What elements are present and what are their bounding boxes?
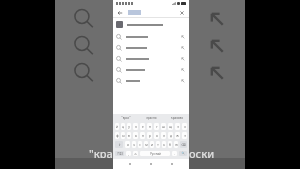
button[interactable]: щ: [168, 123, 173, 130]
button[interactable]: Insert suggestion: [204, 6, 230, 32]
button[interactable]: Insert: [113, 53, 189, 64]
staticText: с: [139, 143, 141, 147]
button[interactable]: Insert: [113, 31, 189, 42]
button[interactable]: Insert suggestion: [204, 33, 230, 59]
button[interactable]: а: [133, 132, 138, 139]
staticText: й: [116, 125, 118, 129]
button[interactable]: Insert suggestion: [204, 60, 230, 86]
staticText: м: [145, 143, 148, 147]
button[interactable]: я: [125, 141, 130, 148]
staticText: ц: [122, 125, 124, 129]
button[interactable]: ь: [162, 141, 166, 148]
staticText: ,: [128, 152, 129, 156]
button[interactable]: з: [175, 123, 180, 130]
button[interactable]: ?123: [115, 151, 124, 156]
button[interactable]: ф: [115, 132, 119, 139]
button[interactable]: д: [168, 132, 173, 139]
button[interactable]: Recents: [168, 160, 176, 168]
staticText: у: [128, 125, 130, 129]
staticText: ю: [175, 143, 178, 147]
button[interactable]: Insert: [180, 67, 186, 73]
staticText: г: [156, 125, 158, 129]
staticText: р: [149, 134, 151, 138]
staticText: ж: [176, 134, 179, 138]
staticText: щ: [169, 125, 172, 129]
button[interactable]: ж: [175, 132, 180, 139]
button[interactable]: с: [138, 141, 142, 148]
button[interactable]: Search: [71, 60, 97, 86]
button[interactable]: э: [182, 132, 187, 139]
button[interactable]: Insert: [180, 45, 186, 51]
button[interactable]: о: [154, 132, 159, 139]
button[interactable]: Insert: [180, 78, 186, 84]
staticText: к: [135, 125, 137, 129]
button[interactable]: ч: [132, 141, 136, 148]
staticText: н: [149, 125, 151, 129]
button[interactable]: ы: [121, 132, 125, 139]
button[interactable]: ш: [161, 123, 166, 130]
button[interactable]: т: [156, 141, 160, 148]
staticText: красиво: [171, 116, 183, 120]
button[interactable]: ц: [121, 123, 125, 130]
staticText: 🔍: [181, 152, 185, 155]
button[interactable]: в: [127, 132, 131, 139]
button[interactable]: ⇧: [115, 141, 123, 148]
button[interactable]: [113, 18, 189, 31]
button[interactable]: х: [182, 123, 187, 130]
button[interactable]: ,: [126, 151, 131, 156]
button[interactable]: р: [147, 132, 152, 139]
button[interactable]: Back: [116, 9, 124, 17]
button[interactable]: п: [140, 132, 145, 139]
staticText: з: [177, 125, 179, 129]
button[interactable]: и: [150, 141, 154, 148]
staticText: ш: [162, 125, 165, 129]
button[interactable]: м: [144, 141, 148, 148]
staticText: красно: [146, 116, 157, 120]
button[interactable]: н: [147, 123, 152, 130]
staticText: д: [170, 134, 172, 138]
button[interactable]: г: [154, 123, 159, 130]
staticText: ы: [122, 134, 125, 138]
button[interactable]: Home: [147, 160, 155, 168]
staticText: "кра: [89, 146, 113, 161]
staticText: .: [174, 152, 175, 156]
button[interactable]: Insert: [180, 34, 186, 40]
staticText: е: [142, 125, 144, 129]
staticText: ь: [163, 143, 165, 147]
button[interactable]: ⌂: [133, 151, 138, 156]
button[interactable]: ⌫: [180, 141, 187, 148]
button[interactable]: у: [127, 123, 131, 130]
staticText: ⌂: [134, 152, 137, 156]
button[interactable]: е: [140, 123, 145, 130]
button[interactable]: л: [161, 132, 166, 139]
button[interactable]: красно: [139, 114, 164, 122]
button[interactable]: 🔍: [179, 151, 187, 156]
staticText: ⌫: [181, 143, 186, 147]
button[interactable]: .: [172, 151, 177, 156]
button[interactable]: Search: [71, 6, 97, 32]
button[interactable]: б: [168, 141, 172, 148]
button[interactable]: Insert: [180, 56, 186, 62]
staticText: э: [184, 134, 186, 138]
staticText: а: [135, 134, 137, 138]
staticText: п: [142, 134, 144, 138]
staticText: Русский: [150, 152, 161, 156]
button[interactable]: красиво: [164, 114, 189, 122]
button[interactable]: Insert: [113, 64, 189, 75]
button[interactable]: Back: [126, 160, 134, 168]
button[interactable]: Search: [71, 33, 97, 59]
button[interactable]: Русский: [140, 151, 170, 156]
staticText: о: [156, 134, 158, 138]
staticText: "крас": [121, 116, 131, 120]
button[interactable]: Clear: [178, 9, 186, 17]
button[interactable]: Insert: [113, 75, 189, 86]
staticText: б: [169, 143, 171, 147]
button[interactable]: ю: [174, 141, 178, 148]
staticText: в: [128, 134, 130, 138]
staticText: ?123: [117, 152, 123, 156]
button[interactable]: Insert: [113, 42, 189, 53]
staticText: и: [151, 143, 153, 147]
button[interactable]: к: [133, 123, 138, 130]
button[interactable]: "крас": [113, 114, 139, 122]
button[interactable]: й: [115, 123, 119, 130]
